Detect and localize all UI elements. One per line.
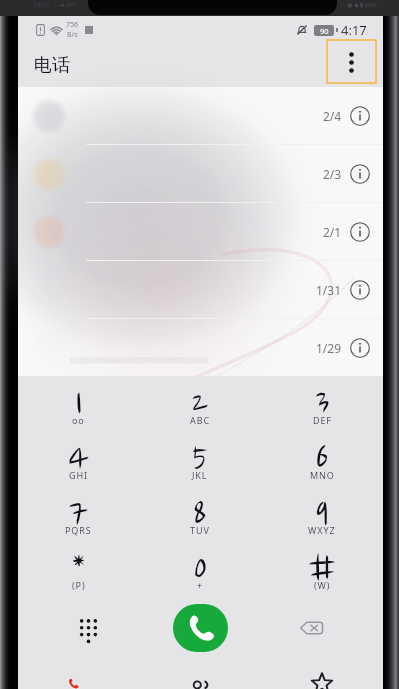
button[interactable]: Favourites [261,652,383,689]
staticText: 1/31 [316,282,342,298]
staticText: B/s [67,30,78,40]
staticText: JKL [192,469,208,481]
button[interactable]: 2/1 [18,203,383,261]
staticText: # [307,551,337,591]
staticText: TUV [190,524,210,536]
staticText: (P) [72,579,86,591]
staticText: 6 [315,441,330,481]
staticText: 4 [68,441,89,481]
button[interactable]: # [261,549,383,604]
button[interactable]: Dialer [18,652,139,689]
staticText: oo [72,414,85,426]
button[interactable]: 2 [139,384,261,439]
button[interactable]: 1 [18,384,139,439]
staticText: 1 [74,386,84,426]
button[interactable]: 7 [18,494,139,549]
staticText: + [197,579,204,591]
staticText: 5 [192,441,208,481]
staticText: * [71,551,87,591]
button[interactable]: 2/4 [18,87,383,145]
staticText: 8 [193,496,207,536]
button[interactable]: 5 [139,439,261,494]
button[interactable]: Call [173,604,228,652]
button[interactable]: Backspace [287,604,335,652]
button[interactable]: 4 [18,439,139,494]
button[interactable]: More options [327,40,376,83]
staticText: 0 [193,551,208,591]
staticText: 756 [66,20,79,30]
staticText: (W) [314,579,331,591]
staticText: 2/3 [323,166,342,182]
staticText: 9 [315,496,330,536]
staticText: PQRS [65,524,92,536]
button[interactable]: * [18,549,139,604]
staticText: ABC [190,414,210,426]
staticText: 电话 [34,54,70,77]
staticText: GHI [69,469,88,481]
staticText: 1/29 [316,340,342,356]
button[interactable]: 6 [261,439,383,494]
staticText: 2/1 [323,224,342,240]
staticText: ▣ ▪ ▮ 68% [347,1,377,9]
button[interactable]: 9 [261,494,383,549]
staticText: 3 [315,386,330,426]
staticText: 7 [69,496,88,536]
staticText: WXYZ [308,524,336,536]
button[interactable]: 1/29 [18,319,383,376]
staticText: 18:55 ⋯ ⏶ 4/5 [34,1,76,9]
button[interactable]: 2/3 [18,145,383,203]
staticText: 4:17 [341,21,367,39]
button[interactable]: 1/31 [18,261,383,319]
button[interactable]: 3 [261,384,383,439]
staticText: 2/4 [323,108,342,124]
staticText: MNO [310,469,335,481]
button[interactable]: Contacts [139,652,261,689]
button[interactable]: Hide keypad [64,604,112,652]
button[interactable]: 8 [139,494,261,549]
button[interactable]: 0 [139,549,261,604]
staticText: 90 [320,26,329,36]
staticText: DEF [313,414,332,426]
staticText: 2 [192,386,208,426]
